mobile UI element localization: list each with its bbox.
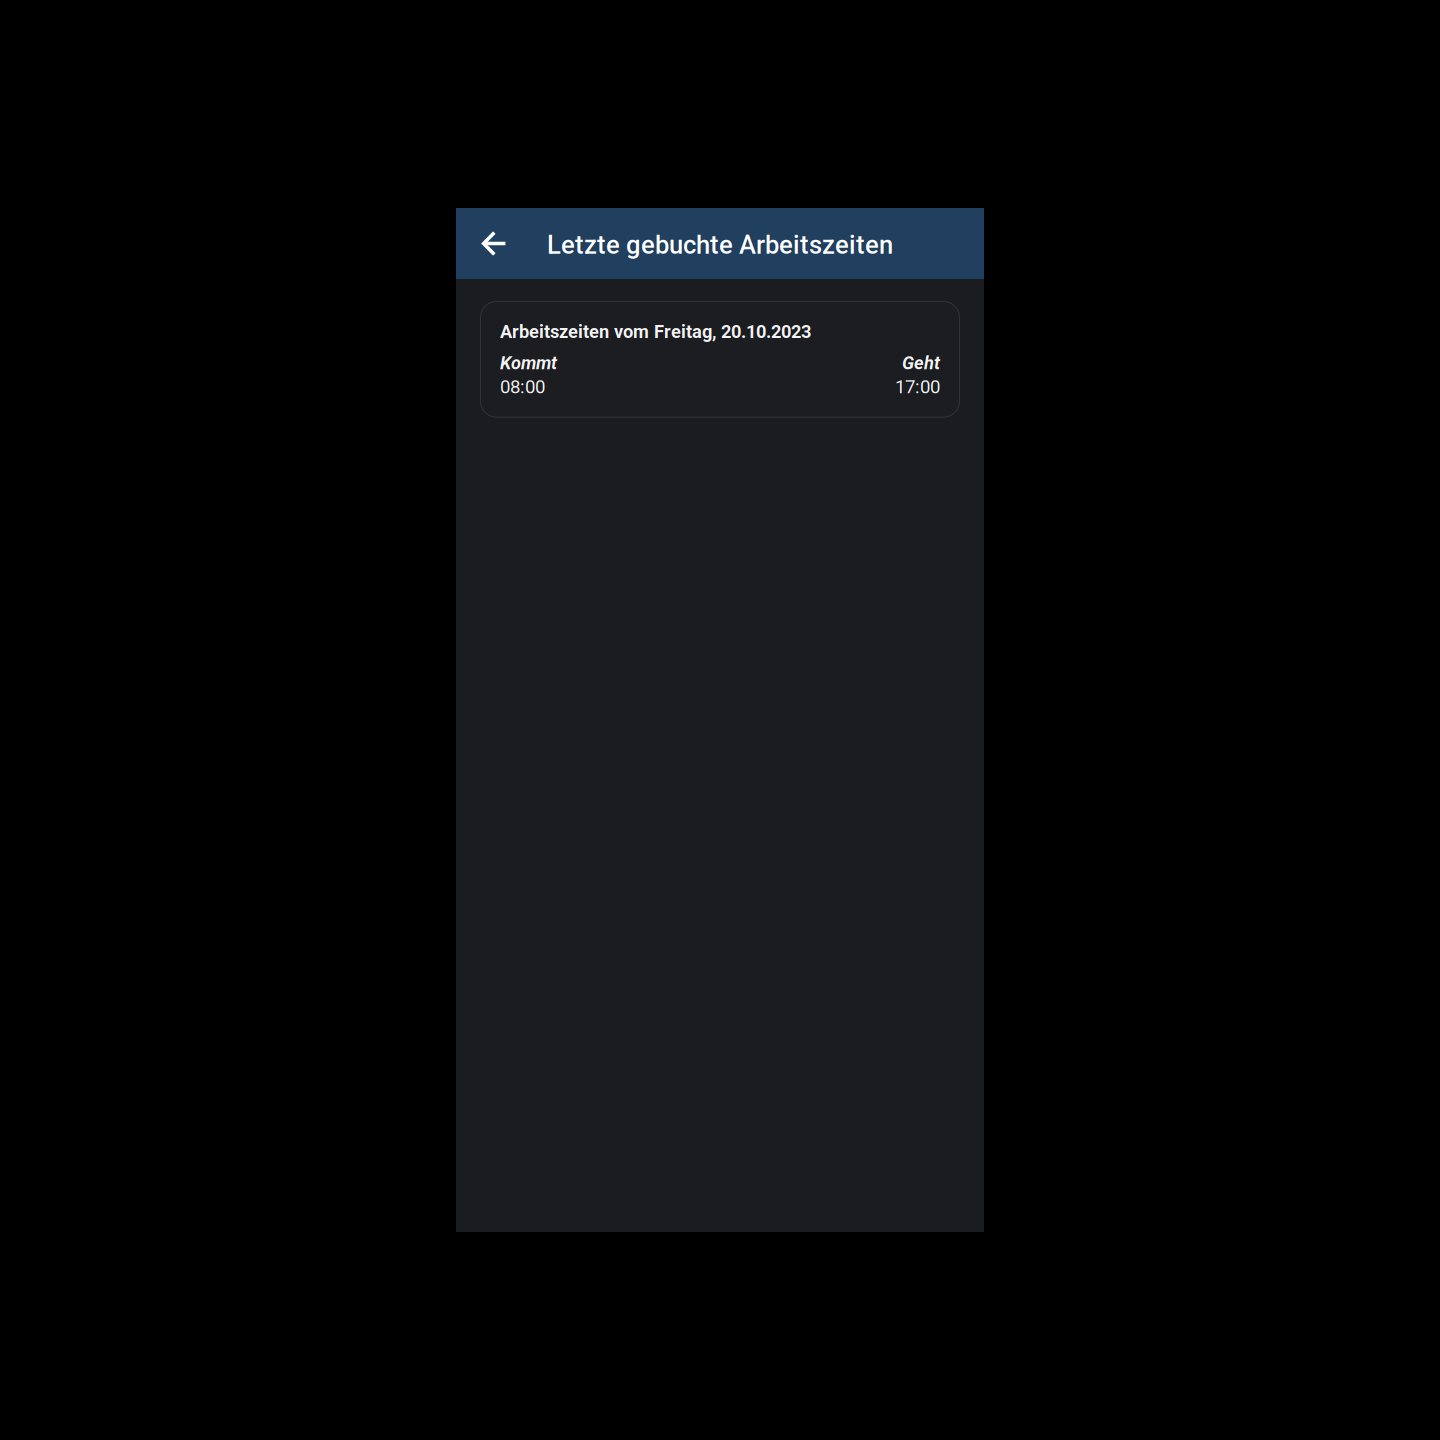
staticText: Geht [902,352,940,374]
staticText: Letzte gebuchte Arbeitszeiten [547,230,893,260]
button[interactable]: Zurück [472,221,517,266]
staticText: Arbeitszeiten vom Freitag, 20.10.2023 [500,321,811,342]
staticText: 17:00 [895,376,940,398]
staticText: 08:00 [500,376,545,398]
staticText: Kommt [500,352,557,374]
